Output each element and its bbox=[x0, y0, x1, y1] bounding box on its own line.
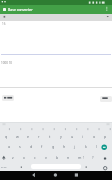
staticText: o bbox=[93, 134, 96, 139]
button[interactable] bbox=[2, 95, 14, 101]
staticText: p bbox=[104, 134, 107, 139]
staticText: Base converter bbox=[8, 7, 33, 12]
staticText: m bbox=[78, 155, 82, 160]
staticText: d bbox=[30, 144, 33, 149]
staticText: e bbox=[27, 134, 30, 139]
staticText: x bbox=[23, 155, 25, 160]
staticText: r bbox=[38, 134, 40, 139]
button[interactable] bbox=[0, 14, 112, 21]
staticText: h bbox=[63, 144, 66, 149]
staticText: 1000 10 bbox=[1, 61, 13, 65]
staticText: k bbox=[85, 144, 87, 149]
button[interactable] bbox=[100, 96, 112, 102]
staticText: c bbox=[34, 155, 36, 160]
staticText: u bbox=[71, 134, 74, 139]
staticText: ?123 bbox=[1, 165, 7, 168]
staticText: g bbox=[52, 144, 55, 149]
button[interactable] bbox=[0, 5, 112, 14]
staticText: t bbox=[49, 134, 51, 139]
staticText: q bbox=[5, 134, 8, 139]
staticText: s bbox=[19, 144, 21, 149]
staticText: ? bbox=[92, 155, 94, 160]
staticText: f bbox=[41, 144, 43, 149]
staticText: w bbox=[16, 134, 19, 139]
staticText: i bbox=[82, 134, 83, 139]
staticText: 16 bbox=[2, 22, 6, 26]
staticText: a bbox=[8, 144, 11, 149]
staticText: z bbox=[12, 155, 14, 160]
staticText: n bbox=[67, 155, 70, 160]
staticText: v bbox=[45, 155, 47, 160]
staticText: j bbox=[74, 144, 75, 149]
staticText: ! bbox=[83, 155, 84, 160]
staticText: y bbox=[60, 134, 62, 139]
staticText: l bbox=[96, 144, 97, 149]
staticText: b bbox=[56, 155, 59, 160]
